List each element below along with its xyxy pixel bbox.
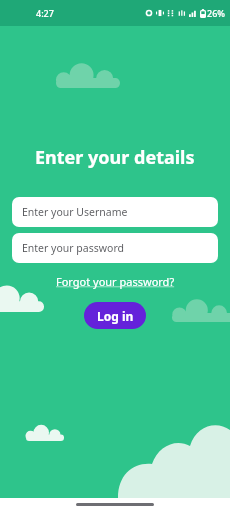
staticText: Enter your password	[22, 241, 124, 255]
button[interactable]: Log in	[84, 302, 146, 329]
button[interactable]: Enter your password	[12, 233, 218, 263]
button[interactable]: Forgot your password?	[54, 273, 177, 290]
other: Home gesture	[76, 503, 154, 506]
button[interactable]: Enter your Username	[12, 197, 218, 227]
staticText: Forgot your password?	[56, 274, 175, 289]
staticText: 4:27	[36, 7, 54, 19]
staticText: Log in	[97, 308, 134, 324]
staticText: Enter your details	[35, 145, 195, 170]
staticText: 26%	[207, 7, 225, 19]
staticText: Enter your Username	[22, 205, 128, 219]
